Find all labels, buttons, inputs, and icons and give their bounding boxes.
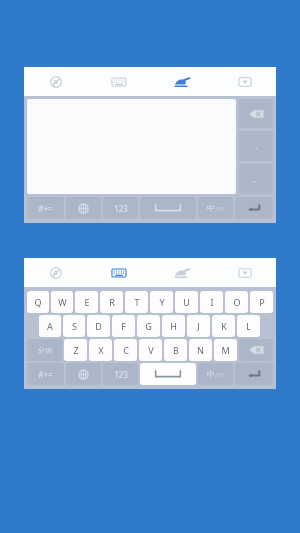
staticText: L <box>246 320 251 332</box>
button[interactable]: Backspace <box>239 99 273 128</box>
staticText: B <box>173 344 179 356</box>
button[interactable]: F <box>112 315 135 337</box>
button[interactable]: Q <box>27 291 49 313</box>
staticText: J <box>197 320 200 332</box>
button[interactable]: X <box>89 339 112 361</box>
staticText: 中 <box>207 369 215 379</box>
button[interactable]: G <box>137 315 160 337</box>
button[interactable]: Enter <box>235 197 273 219</box>
staticText: Z <box>73 344 79 356</box>
staticText: /EN <box>215 372 224 379</box>
button[interactable]: O <box>225 291 248 313</box>
button[interactable]: B <box>164 339 187 361</box>
staticText: Y <box>159 296 165 308</box>
staticText: C <box>123 344 129 356</box>
button[interactable]: Z <box>64 339 87 361</box>
button[interactable]: Handwriting <box>150 67 213 96</box>
button[interactable]: Keyboard <box>87 258 150 287</box>
staticText: U <box>183 296 190 308</box>
button[interactable]: Enter <box>235 363 273 385</box>
button[interactable]: A <box>39 315 61 337</box>
button[interactable]: R <box>100 291 123 313</box>
staticText: H <box>170 320 177 332</box>
staticText: 中 <box>207 203 215 213</box>
button[interactable]: N <box>189 339 212 361</box>
button[interactable]: Keyboard <box>87 67 150 96</box>
staticText: /EN <box>215 206 224 213</box>
staticText: ， <box>253 142 260 151</box>
button[interactable]: Hide keyboard <box>213 67 276 96</box>
staticText: F <box>121 320 126 332</box>
staticText: R <box>109 296 115 308</box>
button[interactable]: J <box>187 315 210 337</box>
button[interactable]: Y <box>150 291 173 313</box>
button[interactable]: V <box>139 339 162 361</box>
button[interactable]: H <box>162 315 185 337</box>
staticText: W <box>58 296 67 308</box>
button[interactable]: Hide keyboard <box>213 258 276 287</box>
staticText: 123 <box>114 369 128 380</box>
button[interactable]: S <box>63 315 85 337</box>
button[interactable]: P <box>250 291 273 313</box>
staticText: G <box>145 320 152 332</box>
button[interactable]: Space <box>140 363 196 385</box>
button[interactable]: Switch language <box>66 363 101 385</box>
button[interactable]: 分词 <box>27 339 62 361</box>
button[interactable]: L <box>237 315 260 337</box>
button[interactable]: Space <box>140 197 196 219</box>
button[interactable]: Emoji <box>24 258 87 287</box>
button[interactable]: M <box>214 339 237 361</box>
button[interactable]: U <box>175 291 198 313</box>
staticText: 123 <box>114 203 128 214</box>
button[interactable]: Backspace <box>239 339 273 361</box>
staticText: T <box>134 296 140 308</box>
button[interactable]: #+= <box>27 363 64 385</box>
button[interactable]: 123 <box>103 197 138 219</box>
button[interactable]: C <box>114 339 137 361</box>
button[interactable]: I <box>200 291 223 313</box>
staticText: Q <box>34 296 42 308</box>
button[interactable]: Switch language <box>66 197 101 219</box>
staticText: #+= <box>38 203 53 214</box>
staticText: P <box>259 296 265 308</box>
staticText: I <box>210 296 214 308</box>
button[interactable]: W <box>51 291 73 313</box>
button[interactable]: T <box>125 291 148 313</box>
staticText: A <box>47 320 53 332</box>
staticText: E <box>84 296 90 308</box>
button[interactable]: 中 <box>198 197 233 219</box>
button[interactable]: D <box>87 315 110 337</box>
button[interactable]: K <box>212 315 235 337</box>
staticText: O <box>233 296 241 308</box>
staticText: D <box>95 320 102 332</box>
staticText: K <box>221 320 227 332</box>
staticText: V <box>148 344 154 356</box>
button[interactable]: E <box>75 291 98 313</box>
staticText: X <box>98 344 104 356</box>
button[interactable]: Emoji <box>24 67 87 96</box>
staticText: M <box>221 344 230 356</box>
button[interactable]: 中 <box>198 363 233 385</box>
button[interactable]: #+= <box>27 197 64 219</box>
staticText: 。 <box>253 175 260 184</box>
staticText: #+= <box>38 369 53 380</box>
button[interactable]: Handwriting <box>150 258 213 287</box>
staticText: S <box>72 320 77 332</box>
button[interactable]: 123 <box>103 363 138 385</box>
staticText: N <box>197 344 204 356</box>
staticText: 分词 <box>38 346 52 355</box>
